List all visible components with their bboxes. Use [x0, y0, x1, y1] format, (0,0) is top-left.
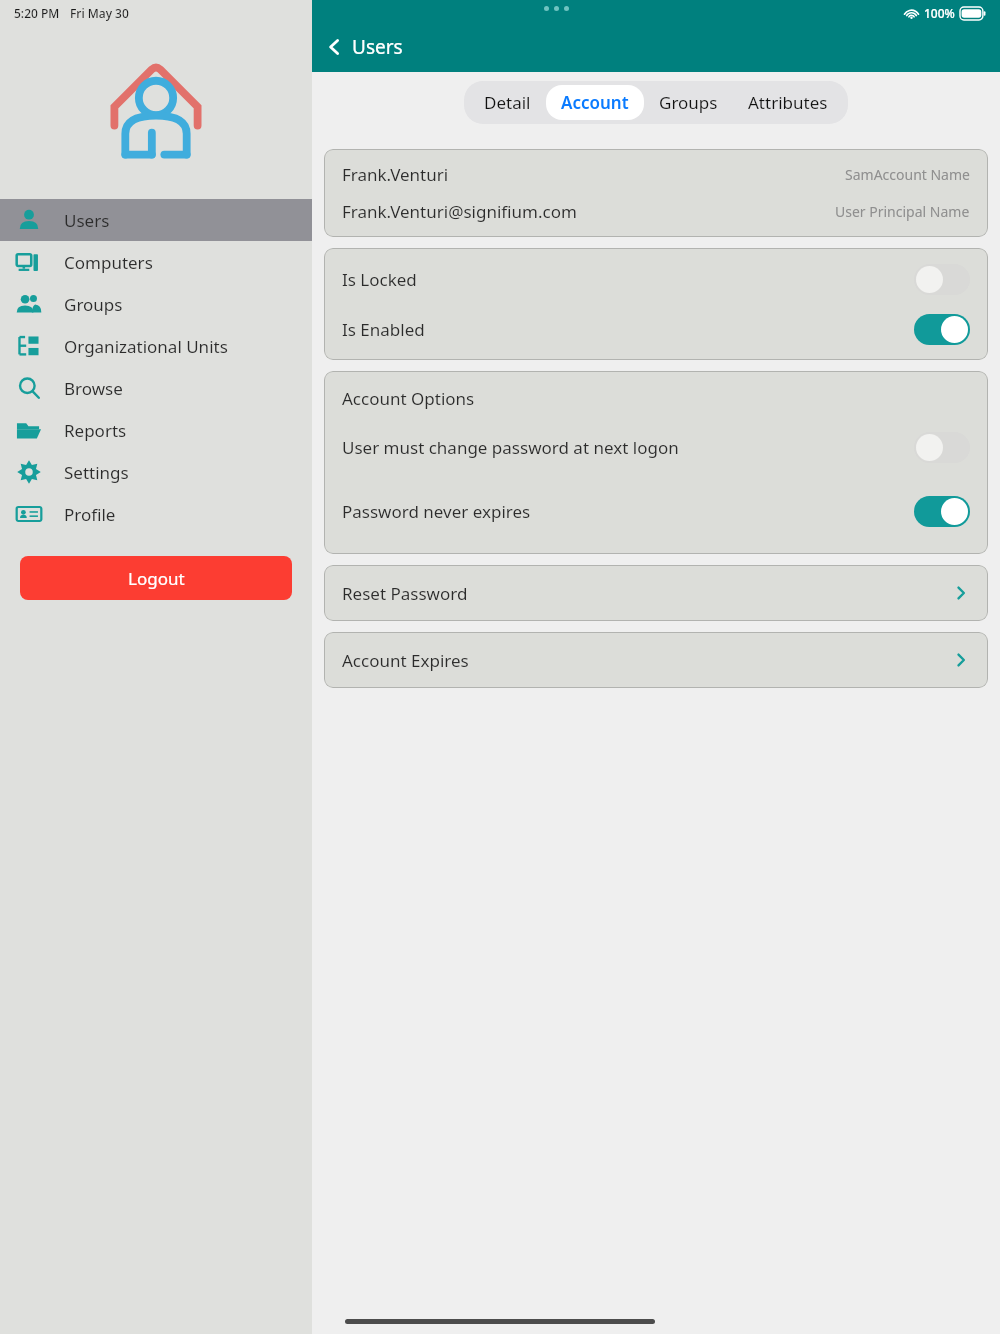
button[interactable]: Back [324, 34, 403, 60]
staticText: Attributes [748, 91, 828, 114]
button[interactable]: Profile [0, 493, 312, 535]
staticText: Organizational Units [64, 335, 228, 358]
button[interactable]: Groups [644, 85, 733, 120]
staticText: Reports [64, 419, 127, 442]
button[interactable]: Is Locked [342, 258, 970, 300]
button[interactable]: Password never expires [342, 490, 970, 532]
button[interactable]: Attributes [733, 85, 843, 120]
button[interactable]: Detail [469, 85, 546, 120]
staticText: Logout [128, 567, 185, 590]
staticText: Account Expires [342, 649, 469, 672]
staticText: Browse [64, 377, 123, 400]
button[interactable]: User must change password at next logon [342, 426, 970, 468]
staticText: 100% [924, 5, 955, 21]
staticText: Is Locked [342, 268, 417, 291]
button[interactable]: Reset Password [324, 565, 988, 621]
button[interactable]: Users [0, 199, 312, 241]
staticText: Account [561, 91, 629, 114]
staticText: 5:20 PM [14, 5, 60, 21]
button[interactable]: Reports [0, 409, 312, 451]
staticText: Settings [64, 461, 129, 484]
button[interactable]: Is Enabled [342, 308, 970, 350]
other: On [914, 496, 970, 527]
other: Off [914, 264, 970, 295]
staticText: Groups [659, 91, 718, 114]
button[interactable]: Settings [0, 451, 312, 493]
staticText: User must change password at next logon [342, 436, 679, 459]
staticText: Groups [64, 293, 123, 316]
staticText: Users [64, 209, 110, 232]
staticText: Reset Password [342, 582, 468, 605]
staticText: Frank.Venturi [342, 163, 449, 186]
staticText: Computers [64, 251, 153, 274]
other: On [914, 314, 970, 345]
button[interactable]: Account Expires [324, 632, 988, 688]
button[interactable]: Computers [0, 241, 312, 283]
staticText: User Principal Name [835, 202, 970, 221]
button[interactable]: Organizational Units [0, 325, 312, 367]
staticText: Users [352, 34, 403, 60]
staticText: Account Options [342, 387, 475, 410]
staticText: Fri May 30 [70, 5, 129, 21]
button[interactable]: Browse [0, 367, 312, 409]
button[interactable]: Account [546, 85, 644, 120]
staticText: Frank.Venturi@signifium.com [342, 200, 577, 223]
staticText: Password never expires [342, 500, 531, 523]
other: Back [324, 37, 344, 57]
staticText: Detail [484, 91, 531, 114]
other: Off [914, 432, 970, 463]
staticText: Profile [64, 503, 116, 526]
button[interactable]: Logout [20, 556, 292, 600]
staticText: Is Enabled [342, 318, 425, 341]
button[interactable]: Groups [0, 283, 312, 325]
staticText: SamAccount Name [845, 165, 970, 184]
